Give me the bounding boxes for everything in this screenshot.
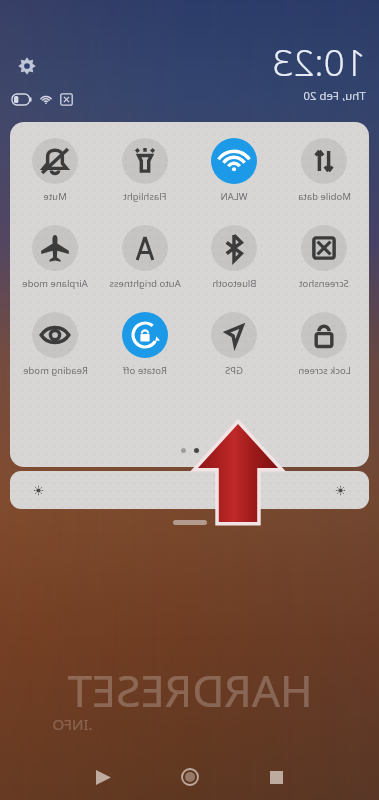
button[interactable]: GPS [190,312,278,377]
staticText: Thu, Feb 20 [303,88,366,104]
button[interactable] [10,471,369,509]
staticText: Screenshot [299,277,349,290]
staticText: Auto brightness [109,277,181,290]
button[interactable]: Reading mode [32,312,78,358]
staticText: Bluetooth [212,277,257,290]
button[interactable]: Mobile data [280,138,368,203]
staticText: HARDRESET [67,660,313,720]
button[interactable]: Rotate off [101,312,189,377]
button[interactable]: Mobile data [301,138,347,184]
button[interactable]: Recents [261,762,291,792]
staticText: Mobile data [298,190,351,203]
staticText: Lock screen [298,364,351,377]
button[interactable]: Bluetooth [211,225,257,271]
button[interactable]: Lock screen [301,312,347,358]
button[interactable]: Mute [11,138,99,203]
button[interactable]: Lock screen [280,312,368,377]
button[interactable]: Home [175,762,205,792]
button[interactable]: Auto brightness [122,225,168,271]
button[interactable]: Settings [16,55,38,77]
button[interactable]: WLAN [211,138,257,184]
staticText: Rotate off [123,364,167,377]
button[interactable]: Airplane mode [32,225,78,271]
staticText: Reading mode [23,364,88,377]
button[interactable]: WLAN [190,138,278,203]
button[interactable]: Reading mode [11,312,99,377]
staticText: WLAN [220,190,248,203]
button[interactable]: Mute [32,138,78,184]
button[interactable]: Auto brightness [101,225,189,290]
button[interactable]: Back [88,762,118,792]
staticText: GPS [225,364,243,377]
staticText: Airplane mode [22,277,88,290]
button[interactable]: Airplane mode [11,225,99,290]
button[interactable]: Flashlight [122,138,168,184]
button[interactable]: Screenshot [280,225,368,290]
button[interactable]: Screenshot [301,225,347,271]
staticText: 10:23 [272,36,366,86]
button[interactable]: Bluetooth [190,225,278,290]
button[interactable]: Flashlight [101,138,189,203]
button[interactable]: Rotate off [122,312,168,358]
staticText: Mute [43,190,67,203]
staticText: Flashlight [123,190,167,203]
button[interactable]: GPS [211,312,257,358]
staticText: .INFO [52,714,93,734]
